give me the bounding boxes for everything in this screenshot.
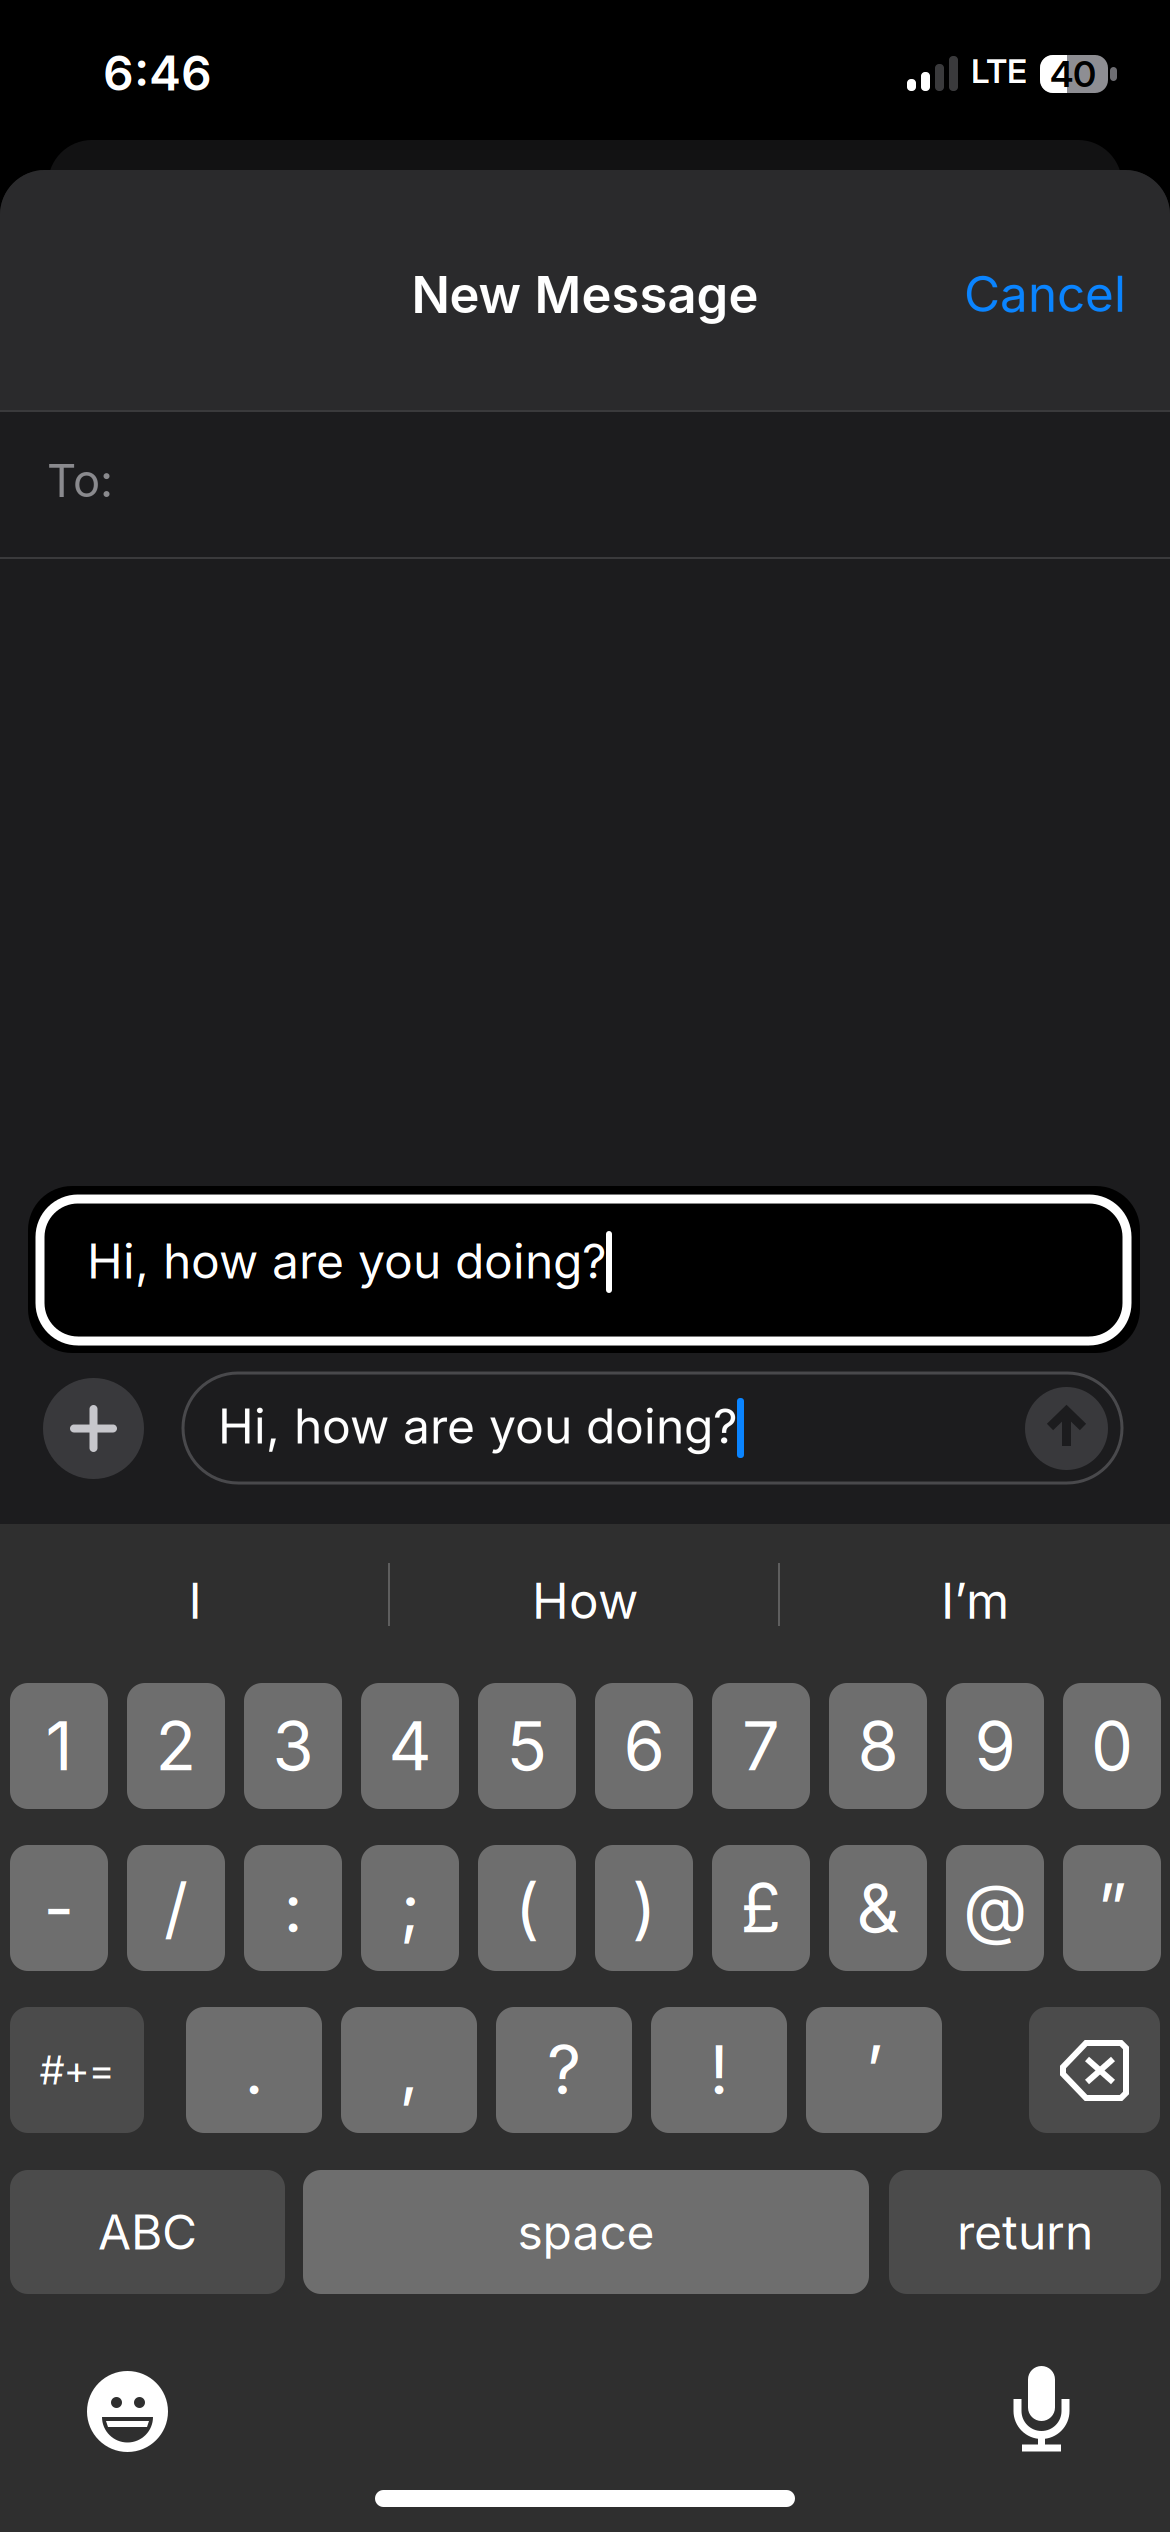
button[interactable]: !: [651, 2007, 787, 2133]
staticText: !: [709, 2030, 728, 2110]
button[interactable]: 7: [712, 1683, 810, 1809]
button[interactable]: How: [390, 1524, 780, 1668]
button[interactable]: @: [946, 1845, 1044, 1971]
button[interactable]: 0: [1063, 1683, 1161, 1809]
staticText: space: [517, 2203, 654, 2261]
staticText: Cancel: [964, 264, 1126, 324]
button[interactable]: Delete: [1029, 2007, 1160, 2133]
staticText: return: [957, 2203, 1093, 2261]
button[interactable]: .: [186, 2007, 322, 2133]
button[interactable]: ’: [806, 2007, 942, 2133]
button[interactable]: #+=: [10, 2007, 144, 2133]
button[interactable]: 6: [595, 1683, 693, 1809]
button[interactable]: space: [303, 2170, 869, 2294]
button[interactable]: ?: [496, 2007, 632, 2133]
staticText: How: [532, 1571, 638, 1631]
button[interactable]: Cancel: [964, 230, 1170, 350]
staticText: 4: [388, 1706, 431, 1786]
staticText: 3: [272, 1706, 313, 1786]
button[interactable]: ”: [1063, 1845, 1161, 1971]
button[interactable]: /: [127, 1845, 225, 1971]
button[interactable]: :: [244, 1845, 342, 1971]
button[interactable]: 5: [478, 1683, 576, 1809]
button[interactable]: Dictate: [1013, 2366, 1073, 2452]
staticText: ;: [400, 1868, 420, 1948]
staticText: (: [515, 1868, 539, 1948]
staticText: 2: [155, 1706, 196, 1786]
button[interactable]: 8: [829, 1683, 927, 1809]
staticText: #+=: [40, 2046, 114, 2094]
staticText: .: [244, 2030, 263, 2110]
staticText: To:: [47, 453, 113, 508]
button[interactable]: ): [595, 1845, 693, 1971]
staticText: I’m: [941, 1571, 1009, 1631]
button[interactable]: Add attachment: [43, 1378, 144, 1479]
button[interactable]: 4: [361, 1683, 459, 1809]
staticText: 6:46: [103, 44, 212, 102]
staticText: @: [963, 1868, 1027, 1948]
staticText: 6: [623, 1706, 664, 1786]
button[interactable]: -: [10, 1845, 108, 1971]
staticText: 1: [45, 1706, 72, 1786]
button[interactable]: &: [829, 1845, 927, 1971]
staticText: /: [164, 1868, 188, 1948]
staticText: :: [283, 1868, 302, 1948]
staticText: 40: [1050, 52, 1096, 96]
button[interactable]: ABC: [10, 2170, 285, 2294]
staticText: ”: [1097, 1868, 1126, 1948]
staticText: I: [188, 1571, 201, 1631]
staticText: £: [740, 1868, 781, 1948]
staticText: ABC: [98, 2203, 197, 2261]
staticText: ’: [865, 2030, 882, 2110]
button[interactable]: £: [712, 1845, 810, 1971]
button[interactable]: 9: [946, 1683, 1044, 1809]
button[interactable]: ;: [361, 1845, 459, 1971]
button[interactable]: I’m: [780, 1524, 1170, 1668]
staticText: Hi, how are you doing?: [87, 1232, 607, 1290]
staticText: 5: [506, 1706, 547, 1786]
staticText: LTE: [971, 51, 1027, 91]
staticText: ): [632, 1868, 656, 1948]
staticText: 9: [974, 1706, 1015, 1786]
staticText: -: [43, 1868, 74, 1948]
staticText: 0: [1091, 1706, 1133, 1786]
staticText: 7: [742, 1706, 780, 1786]
button[interactable]: 3: [244, 1683, 342, 1809]
button[interactable]: Emoji: [87, 2371, 168, 2452]
staticText: 8: [857, 1706, 898, 1786]
button[interactable]: I: [0, 1524, 390, 1668]
button[interactable]: Send: [1025, 1387, 1108, 1470]
staticText: New Message: [411, 264, 758, 325]
button[interactable]: return: [889, 2170, 1161, 2294]
staticText: ?: [547, 2030, 581, 2110]
button[interactable]: ,: [341, 2007, 477, 2133]
button[interactable]: 1: [10, 1683, 108, 1809]
button[interactable]: (: [478, 1845, 576, 1971]
staticText: ,: [399, 2030, 418, 2110]
staticText: &: [856, 1868, 899, 1948]
button[interactable]: 2: [127, 1683, 225, 1809]
staticText: Hi, how are you doing?: [218, 1397, 738, 1455]
